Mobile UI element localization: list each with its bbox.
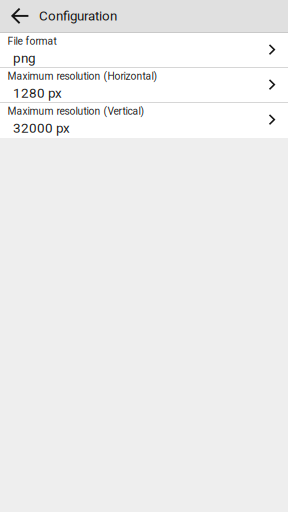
staticText: 1280 px <box>13 85 62 101</box>
staticText: Configuration <box>39 8 117 24</box>
staticText: Maximum resolution (Vertical) <box>7 105 144 117</box>
button[interactable]: Maximum resolution (Horizontal) <box>0 68 288 102</box>
button[interactable]: Back <box>0 0 39 32</box>
staticText: Maximum resolution (Horizontal) <box>7 70 157 82</box>
staticText: png <box>13 50 36 66</box>
staticText: 32000 px <box>13 120 70 136</box>
button[interactable]: File format <box>0 33 288 67</box>
staticText: File format <box>7 35 56 47</box>
button[interactable]: Maximum resolution (Vertical) <box>0 103 288 138</box>
